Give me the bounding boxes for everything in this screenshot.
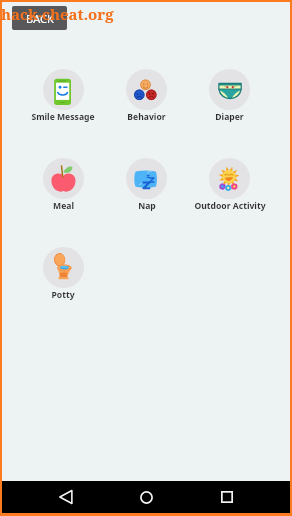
staticText: Nap xyxy=(138,200,156,212)
button[interactable]: BACK xyxy=(12,6,67,30)
button[interactable]: Behavior xyxy=(105,69,188,123)
staticText: Behavior xyxy=(127,111,166,123)
staticText: Outdoor Activity xyxy=(194,200,266,212)
button[interactable]: Home xyxy=(128,481,164,513)
button[interactable]: Recents xyxy=(209,481,245,513)
staticText: Meal xyxy=(53,200,74,212)
button[interactable]: Meal xyxy=(21,158,105,212)
button[interactable]: Smile Message xyxy=(21,69,105,123)
button[interactable]: Diaper xyxy=(188,69,271,123)
staticText: hack-cheat.org xyxy=(1,4,114,24)
button[interactable]: Nap xyxy=(105,158,188,212)
button[interactable]: Back xyxy=(48,481,84,513)
staticText: Diaper xyxy=(215,111,244,123)
staticText: Smile Message xyxy=(31,111,95,123)
staticText: BACK xyxy=(26,11,54,26)
staticText: Potty xyxy=(51,289,75,301)
button[interactable]: Potty xyxy=(21,247,105,301)
button[interactable]: Outdoor Activity xyxy=(188,158,271,212)
